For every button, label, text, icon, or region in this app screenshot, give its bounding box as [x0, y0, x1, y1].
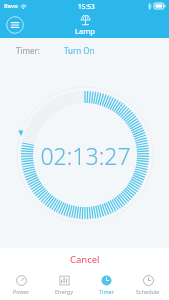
staticText: Revo	[4, 2, 18, 10]
button[interactable]: Energy	[43, 270, 85, 300]
staticText: 02:13:27	[40, 140, 131, 171]
button[interactable]: Cancel	[0, 248, 169, 270]
button[interactable]: Power	[0, 270, 43, 300]
staticText: Timer:	[16, 45, 40, 56]
staticText: Power	[13, 288, 30, 295]
button[interactable]: Menu	[6, 16, 24, 34]
staticText: 15:53	[78, 2, 95, 11]
staticText: Timer	[99, 288, 114, 295]
staticText: Lamp	[75, 26, 95, 36]
staticText: Cancel	[70, 253, 100, 266]
button[interactable]: Turn On	[64, 45, 95, 56]
staticText: Schedule	[136, 288, 160, 295]
button[interactable]: Timer	[85, 270, 127, 300]
staticText: Turn On	[64, 45, 95, 56]
staticText: Energy	[55, 288, 73, 295]
button[interactable]: Schedule	[127, 270, 169, 300]
